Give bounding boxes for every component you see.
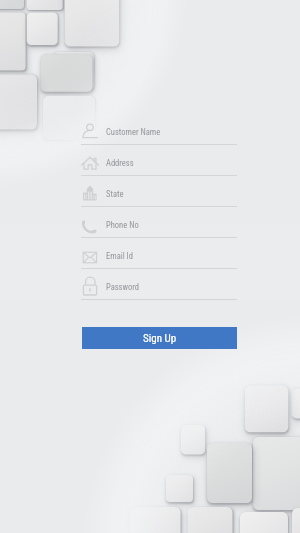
button[interactable]: Email Id <box>0 238 300 269</box>
staticText: Email Id <box>106 251 133 261</box>
button[interactable]: Address <box>0 145 300 176</box>
button[interactable]: Password <box>0 269 300 300</box>
staticText: Address <box>106 158 134 168</box>
button[interactable]: Sign Up <box>82 327 237 349</box>
staticText: Customer Name <box>106 127 161 137</box>
staticText: Phone No <box>106 220 139 230</box>
button[interactable]: Phone No <box>0 207 300 238</box>
staticText: Sign Up <box>143 332 177 345</box>
staticText: State <box>106 189 124 199</box>
button[interactable]: State <box>0 176 300 207</box>
button[interactable]: Customer Name <box>0 114 300 145</box>
staticText: Password <box>106 282 140 292</box>
